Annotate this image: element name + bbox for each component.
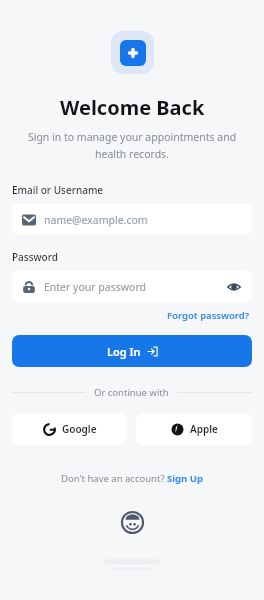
staticText: name@example.com <box>44 213 148 227</box>
button[interactable]: Forgot password? <box>165 308 252 323</box>
button[interactable]: Don't have an account? Sign Up <box>57 470 207 487</box>
staticText: Password <box>12 250 58 264</box>
button[interactable]: Enter your password <box>12 271 252 302</box>
staticText: Or continue with <box>94 386 169 399</box>
staticText: Forgot password? <box>167 309 250 322</box>
button[interactable]: name@example.com <box>12 204 252 235</box>
button[interactable]: Log In <box>12 335 252 367</box>
staticText: Apple <box>190 422 218 436</box>
staticText: Don't have an account? Sign Up <box>61 472 203 485</box>
button[interactable]: Show password <box>226 279 242 295</box>
staticText: Welcome Back <box>60 94 205 121</box>
button[interactable]: Google <box>12 413 127 445</box>
staticText: Email or Username <box>12 183 104 197</box>
staticText: Google <box>62 422 97 436</box>
staticText: Sign in to manage your appointments and … <box>14 130 250 161</box>
button[interactable]: Account avatar <box>121 511 144 534</box>
button[interactable]: Apple <box>136 413 252 445</box>
staticText: Log In <box>107 344 141 359</box>
staticText: Enter your password <box>44 280 146 294</box>
